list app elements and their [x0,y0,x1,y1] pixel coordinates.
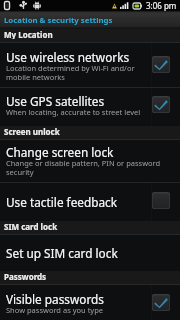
staticText: Location determined by Wi-Fi and/or mobi… [6,63,135,82]
button[interactable]: Enabled [152,294,170,311]
button[interactable]: Disabled [152,192,170,209]
staticText: Passwords [4,271,47,281]
button[interactable]: Use tactile feedback [0,183,180,221]
staticText: Visible passwords [6,291,104,307]
staticText: Set up SIM card lock [6,245,118,261]
button[interactable]: Enabled [152,96,170,113]
staticText: Show password as you type [6,305,104,315]
staticText: Location & security settings [4,15,113,26]
staticText: Change or disable pattern, PIN or passwo… [6,158,161,177]
staticText: Screen unlock [4,126,60,136]
staticText: Use tactile feedback [6,194,118,210]
staticText: 3:06 pm [146,0,177,11]
staticText: Use GPS satellites [6,93,105,109]
button[interactable]: Visible passwords [0,285,180,320]
staticText: My Location [4,29,53,39]
button[interactable]: Enabled [152,56,170,73]
staticText: Change screen lock [6,144,114,160]
staticText: When locating, accurate to street level [6,107,141,117]
staticText: SIM card lock [4,221,58,231]
button[interactable]: Set up SIM card lock [0,235,180,271]
button[interactable]: Use GPS satellites [0,88,180,126]
button[interactable]: Change screen lock [0,140,180,182]
button[interactable]: Use wireless networks [0,43,180,87]
staticText: Use wireless networks [6,49,130,65]
